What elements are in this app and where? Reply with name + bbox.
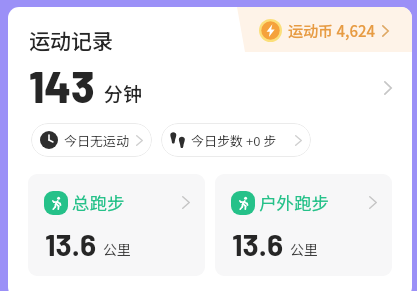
staticText: 13.6: [45, 226, 97, 262]
staticText: 公里: [103, 239, 131, 259]
staticText: 今日无运动: [64, 131, 130, 150]
staticText: 总跑步: [72, 190, 125, 215]
staticText: 运动记录: [29, 25, 113, 55]
button[interactable]: 今日无运动: [31, 123, 152, 157]
button[interactable]: 今日步数 +0 步: [161, 123, 311, 157]
staticText: 143: [29, 60, 95, 108]
staticText: 分钟: [104, 79, 143, 107]
button[interactable]: 总跑步: [28, 174, 205, 276]
staticText: 今日步数 +0 步: [191, 131, 277, 150]
staticText: 运动币 4,624: [288, 20, 376, 42]
staticText: 13.6: [232, 226, 284, 262]
button[interactable]: 运动币 4,624: [259, 18, 389, 43]
button[interactable]: 运动记录详情: [375, 75, 401, 101]
staticText: 户外跑步: [259, 190, 329, 215]
staticText: 公里: [290, 239, 318, 259]
button[interactable]: 户外跑步: [215, 174, 392, 276]
